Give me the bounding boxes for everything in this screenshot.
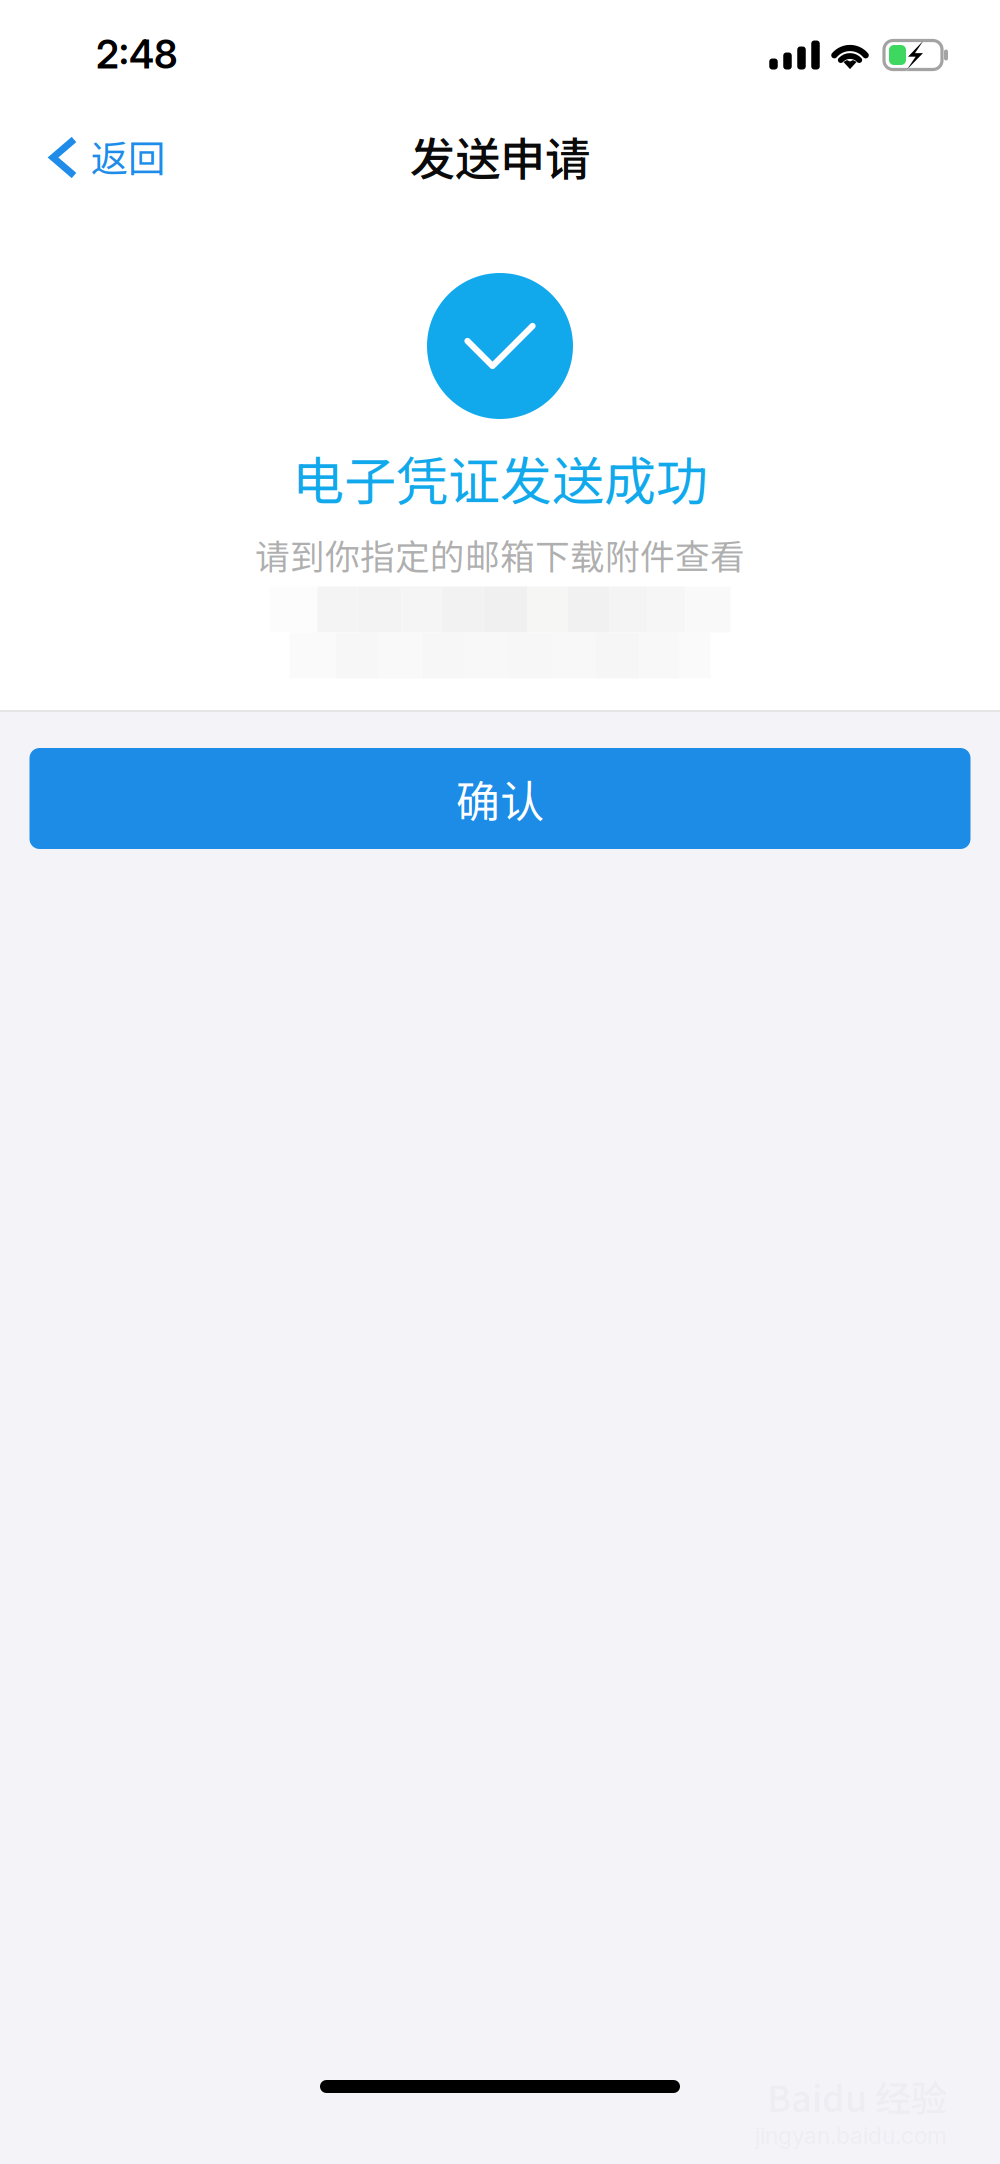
button[interactable]: 确认: [29, 748, 970, 849]
staticText: 2:48: [96, 31, 178, 78]
staticText: 返回: [91, 129, 165, 183]
staticText: 确认: [456, 767, 544, 830]
button[interactable]: 返回: [0, 113, 189, 199]
staticText: 请到你指定的邮箱下载附件查看: [255, 529, 745, 579]
staticText: 发送申请: [410, 123, 590, 189]
staticText: 电子凭证发送成功: [292, 440, 708, 515]
